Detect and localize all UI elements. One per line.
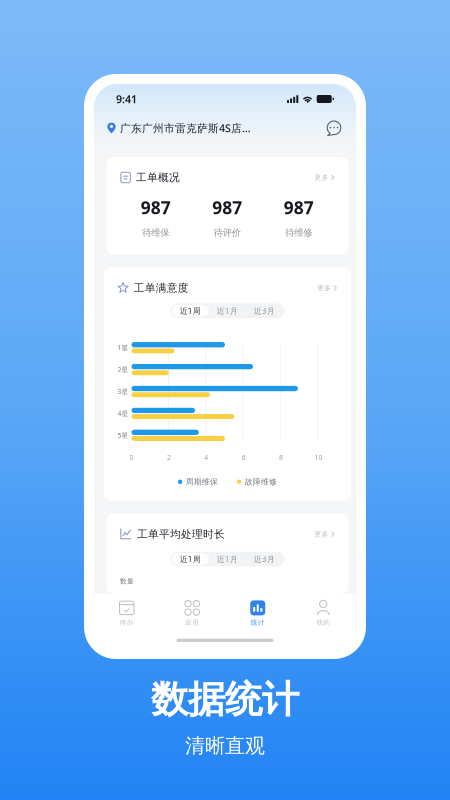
staticText: 987	[284, 196, 314, 219]
staticText: 统计	[251, 618, 265, 627]
staticText: 周期维保	[186, 477, 218, 487]
staticText: 待评价	[214, 227, 241, 238]
button[interactable]: 更多	[315, 171, 335, 184]
button[interactable]: 待办	[94, 594, 159, 630]
button[interactable]: Messages	[326, 120, 342, 136]
staticText: 待办	[120, 618, 134, 627]
staticText: 4星	[117, 409, 128, 418]
staticText: 5星	[117, 431, 128, 440]
button[interactable]: 近1月	[209, 305, 246, 316]
staticText: 更多	[315, 530, 329, 538]
staticText: 987	[212, 196, 242, 219]
button[interactable]: 更多	[315, 528, 335, 540]
button[interactable]: 987	[120, 196, 192, 238]
staticText: 工单概况	[136, 171, 180, 184]
button[interactable]: 987	[192, 196, 263, 238]
button[interactable]: 更多	[317, 282, 337, 294]
staticText: 3星	[117, 387, 128, 396]
staticText: 2	[167, 453, 171, 462]
staticText: 更多	[317, 284, 331, 292]
staticText: 数量	[120, 577, 134, 585]
staticText: 987	[141, 196, 171, 219]
staticText: 近3月	[254, 554, 275, 564]
staticText: 工单平均处理时长	[137, 528, 225, 541]
button[interactable]: 近3月	[246, 553, 283, 565]
staticText: 9:41	[116, 92, 137, 106]
button[interactable]: 近1周	[172, 305, 209, 316]
staticText: 广东广州市雷克萨斯4S店…	[120, 121, 251, 135]
staticText: 更多	[315, 173, 329, 182]
staticText: 近3月	[254, 305, 275, 316]
staticText: 1星	[117, 343, 128, 352]
staticText: 近1月	[217, 554, 238, 564]
staticText: 6	[242, 453, 246, 462]
staticText: 待维保	[142, 227, 169, 238]
staticText: 清晰直观	[185, 733, 265, 758]
staticText: 近1月	[217, 305, 238, 316]
button[interactable]: 我的	[290, 594, 356, 630]
button[interactable]: 987	[263, 196, 335, 238]
staticText: 0	[129, 453, 133, 462]
staticText: 我的	[316, 618, 330, 627]
staticText: 工单满意度	[134, 281, 189, 294]
staticText: 8	[279, 453, 283, 462]
staticText: 故障维修	[245, 477, 277, 487]
button[interactable]: 统计	[225, 594, 290, 630]
staticText: 数据统计	[151, 677, 299, 722]
staticText: 应用	[185, 618, 199, 627]
button[interactable]: 近1周	[172, 553, 209, 565]
staticText: 近1周	[180, 554, 201, 564]
button[interactable]: 应用	[159, 594, 225, 630]
button[interactable]: 近3月	[246, 305, 283, 316]
staticText: 待维修	[285, 227, 312, 238]
staticText: 10	[314, 453, 322, 462]
staticText: 近1周	[180, 305, 201, 316]
button[interactable]: 近1月	[209, 553, 246, 565]
staticText: 2星	[117, 365, 128, 374]
staticText: 4	[204, 453, 208, 462]
